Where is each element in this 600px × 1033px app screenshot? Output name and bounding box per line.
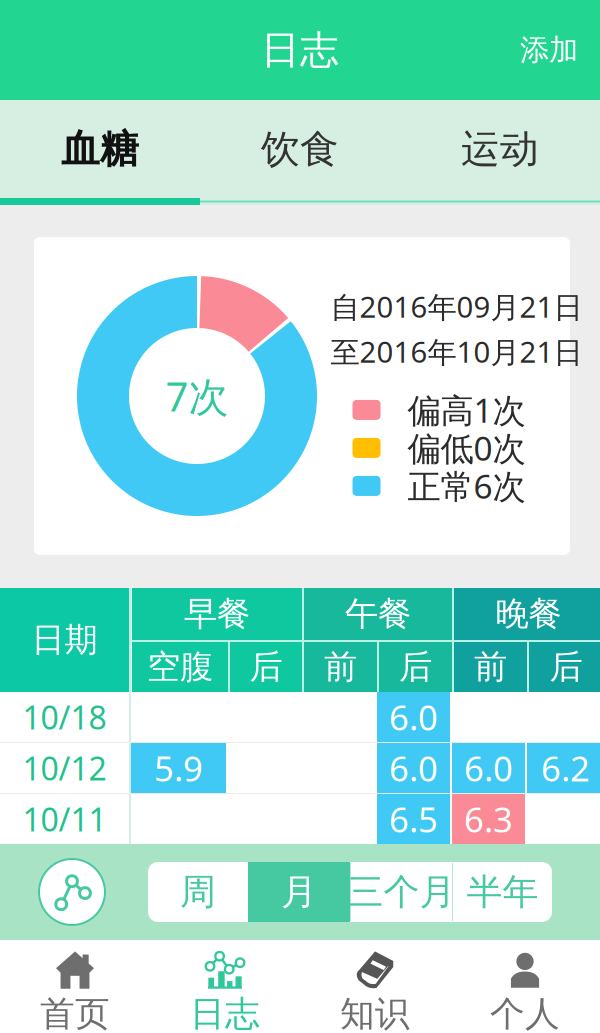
staticText: 偏高1次 <box>407 388 525 432</box>
staticText: 6.2 <box>541 745 590 791</box>
staticText: 饮食 <box>261 125 339 173</box>
staticText: 空腹 <box>147 646 213 687</box>
button[interactable]: 血糖 <box>0 100 200 198</box>
staticText: 6.0 <box>389 745 438 791</box>
staticText: 添加 <box>520 32 578 68</box>
staticText: 后 <box>549 646 582 687</box>
staticText: 血糖 <box>61 125 139 173</box>
staticText: 周 <box>180 870 216 914</box>
staticText: 5.9 <box>154 745 203 791</box>
staticText: 日期 <box>31 619 97 660</box>
button[interactable]: 个人 <box>450 940 600 1033</box>
staticText: 后 <box>399 646 432 687</box>
button[interactable]: 首页 <box>0 940 150 1033</box>
staticText: 午餐 <box>345 593 411 634</box>
staticText: 7次 <box>165 369 228 422</box>
staticText: 10/18 <box>22 696 106 738</box>
staticText: 偏低0次 <box>407 426 525 470</box>
button[interactable]: 饮食 <box>200 100 400 198</box>
staticText: 三个月 <box>347 870 455 914</box>
button[interactable]: 三个月 <box>351 862 452 922</box>
staticText: 月 <box>281 870 317 914</box>
button[interactable]: 添加 <box>520 32 600 68</box>
staticText: 至2016年10月21日 <box>330 332 582 371</box>
staticText: 后 <box>249 646 282 687</box>
staticText: 首页 <box>40 993 110 1033</box>
staticText: 日志 <box>190 993 260 1033</box>
staticText: 10/12 <box>22 747 106 789</box>
button[interactable]: 运动 <box>400 100 600 198</box>
staticText: 前 <box>474 646 507 687</box>
staticText: 个人 <box>490 993 560 1033</box>
staticText: 运动 <box>461 125 539 173</box>
button[interactable]: Share <box>39 859 105 925</box>
button[interactable]: 知识 <box>300 940 450 1033</box>
staticText: 6.0 <box>464 745 513 791</box>
staticText: 自2016年09月21日 <box>330 287 582 326</box>
staticText: 6.3 <box>464 796 513 842</box>
staticText: 知识 <box>340 993 410 1033</box>
button[interactable]: 半年 <box>453 862 552 922</box>
staticText: 日志 <box>261 26 339 74</box>
staticText: 正常6次 <box>407 464 525 508</box>
button[interactable]: 周 <box>148 862 248 922</box>
staticText: 6.5 <box>389 796 438 842</box>
staticText: 6.0 <box>389 694 438 740</box>
button[interactable]: 日志 <box>150 940 300 1033</box>
staticText: 早餐 <box>184 593 250 634</box>
staticText: 半年 <box>466 870 538 914</box>
staticText: 10/11 <box>22 798 106 840</box>
staticText: 前 <box>324 646 357 687</box>
staticText: 晚餐 <box>495 593 561 634</box>
button[interactable]: 月 <box>248 862 350 922</box>
